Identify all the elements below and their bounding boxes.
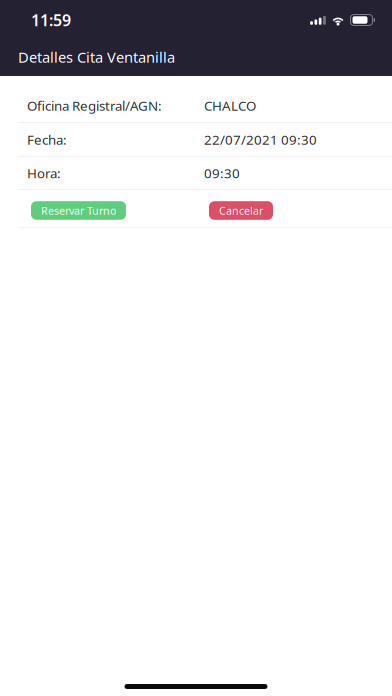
staticText: Fecha: (27, 131, 67, 148)
staticText: Oficina Registral/AGN: (27, 97, 162, 114)
staticText: Reservar Turno (41, 203, 116, 218)
staticText: Detalles Cita Ventanilla (18, 47, 175, 67)
staticText: Hora: (27, 164, 61, 182)
staticText: 22/07/2021 09:30 (204, 131, 317, 148)
staticText: 09:30 (204, 164, 240, 182)
staticText: 11:59 (31, 9, 71, 31)
staticText: Cancelar (219, 203, 263, 218)
button[interactable]: Cancelar (209, 197, 273, 220)
staticText: CHALCO (204, 97, 256, 114)
button[interactable]: Reservar Turno (31, 197, 126, 220)
